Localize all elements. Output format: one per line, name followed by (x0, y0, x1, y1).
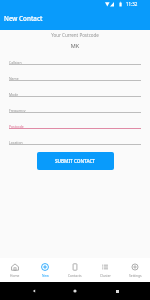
staticText: New Contact (4, 14, 43, 23)
staticText: Location (9, 140, 23, 145)
staticText: Name (9, 76, 19, 81)
button[interactable]: Home (67, 283, 83, 299)
staticText: Settings (129, 273, 142, 277)
staticText: MK (9, 42, 141, 49)
button[interactable]: Settings (120, 258, 150, 282)
staticText: SUBMIT CONTACT (55, 158, 96, 164)
staticText: Your Current Postcode (9, 32, 141, 38)
staticText: New (42, 273, 49, 277)
staticText: 11:32 (126, 1, 138, 7)
staticText: Home (10, 273, 20, 277)
button[interactable]: Recents (109, 283, 125, 299)
staticText: Mode (9, 92, 19, 97)
staticText: Postcode (9, 124, 24, 129)
staticText: Callsign (9, 60, 22, 65)
staticText: Frequency (9, 108, 26, 113)
button[interactable]: New (30, 258, 60, 282)
button[interactable]: Back (26, 283, 42, 299)
staticText: Cluster (100, 273, 111, 277)
button[interactable]: Home (0, 258, 30, 282)
button[interactable]: Contacts (60, 258, 90, 282)
staticText: Contacts (68, 273, 82, 277)
button[interactable]: Cluster (90, 258, 120, 282)
button[interactable]: SUBMIT CONTACT (37, 152, 114, 170)
